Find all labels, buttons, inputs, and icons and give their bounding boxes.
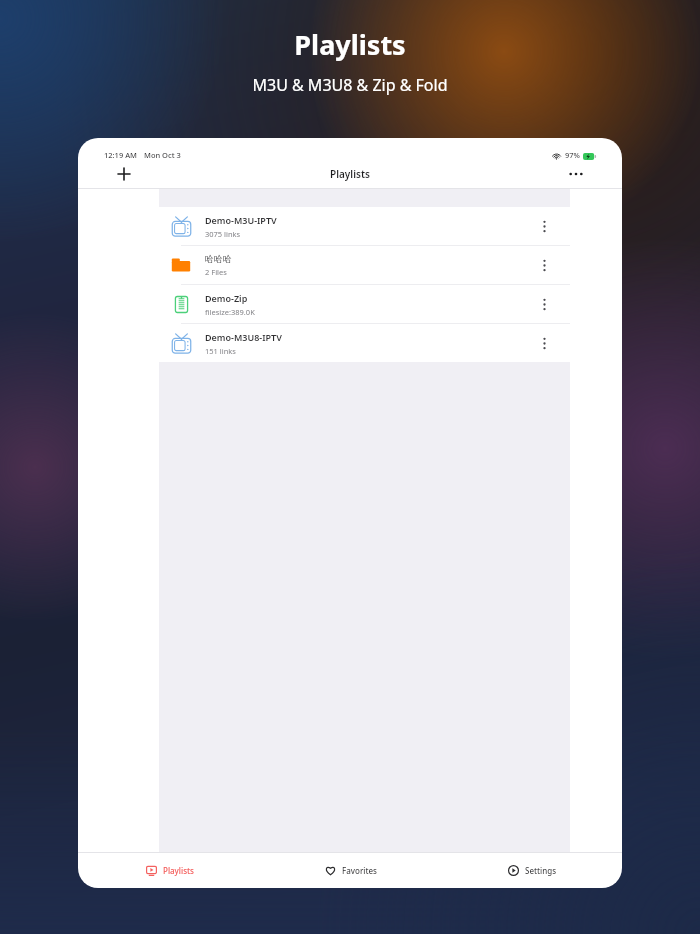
staticText: 2 Files xyxy=(205,267,227,277)
staticText: Settings xyxy=(525,865,557,876)
staticText: M3U & M3U8 & Zip & Fold xyxy=(252,74,448,96)
button[interactable]: Favorites xyxy=(260,853,441,887)
staticText: 97% xyxy=(565,150,580,160)
staticText: 12:19 AM xyxy=(104,150,137,160)
button[interactable]: Item menu xyxy=(532,331,556,355)
staticText: Demo-M3U8-IPTV xyxy=(205,331,282,343)
staticText: Playlists xyxy=(330,167,370,181)
staticText: 哈哈哈 xyxy=(205,253,232,264)
staticText: Demo-Zip xyxy=(205,292,248,304)
button[interactable]: More options xyxy=(564,162,588,186)
staticText: Mon Oct 3 xyxy=(144,150,181,160)
button[interactable]: Demo-M3U8-IPTV xyxy=(159,324,570,362)
button[interactable]: Add playlist xyxy=(112,162,136,186)
button[interactable]: Item menu xyxy=(532,292,556,316)
staticText: 3075 links xyxy=(205,229,241,239)
button[interactable]: Settings xyxy=(441,853,622,887)
button[interactable]: Demo-Zip xyxy=(159,285,570,323)
button[interactable]: Demo-M3U-IPTV xyxy=(159,207,570,245)
staticText: 151 links xyxy=(205,346,236,356)
button[interactable]: 哈哈哈 xyxy=(159,246,570,284)
staticText: Demo-M3U-IPTV xyxy=(205,214,277,226)
button[interactable]: Item menu xyxy=(532,214,556,238)
staticText: filesize:389.0K xyxy=(205,307,255,317)
button[interactable]: Item menu xyxy=(532,253,556,277)
staticText: Favorites xyxy=(342,865,377,876)
button[interactable]: Playlists xyxy=(78,853,260,887)
staticText: Playlists xyxy=(163,865,194,876)
staticText: Playlists xyxy=(294,26,406,63)
